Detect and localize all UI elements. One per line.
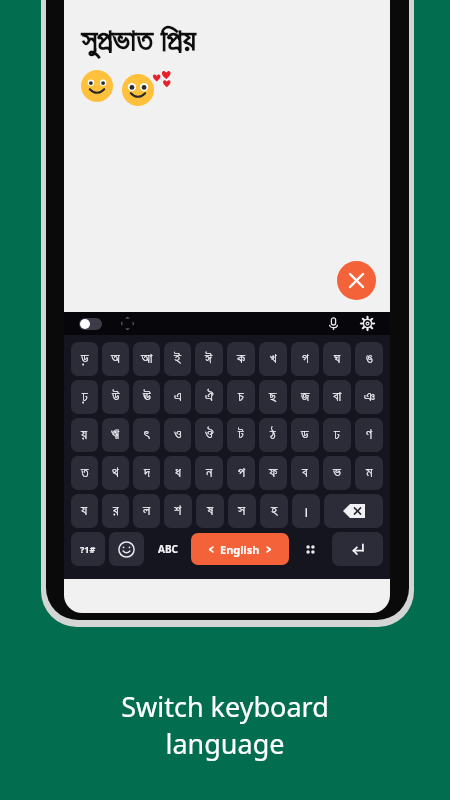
staticText: English xyxy=(220,542,260,557)
button[interactable]: এ xyxy=(164,380,191,414)
staticText: ধ xyxy=(175,466,181,480)
button[interactable]: থ xyxy=(102,456,129,490)
button[interactable]: শ xyxy=(164,494,192,528)
button[interactable]: উ xyxy=(102,380,129,414)
staticText: হ xyxy=(271,504,278,518)
staticText: ঢ় xyxy=(82,390,88,404)
button[interactable]: চ xyxy=(227,380,255,414)
button[interactable]: ষ xyxy=(196,494,224,528)
staticText: ঠ xyxy=(270,428,276,442)
staticText: চ xyxy=(238,390,244,404)
button[interactable]: ঊ xyxy=(133,380,160,414)
button[interactable]: Emoji xyxy=(109,532,144,566)
button[interactable]: গ xyxy=(291,342,319,376)
staticText: ই xyxy=(174,352,182,366)
staticText: শ xyxy=(174,504,182,518)
staticText: আ xyxy=(141,352,153,366)
staticText: ঋ xyxy=(111,428,120,442)
button[interactable]: আ xyxy=(133,342,160,376)
staticText: থ xyxy=(112,466,119,480)
button[interactable]: স xyxy=(228,494,256,528)
staticText: ক xyxy=(237,352,245,366)
staticText: অ xyxy=(111,352,120,366)
staticText: ব xyxy=(302,466,308,480)
button[interactable]: ড় xyxy=(71,342,98,376)
staticText: ণ xyxy=(366,428,372,442)
staticText: ন xyxy=(206,466,213,480)
staticText: ছ xyxy=(269,390,277,404)
button[interactable]: Enter xyxy=(332,532,383,566)
button[interactable]: ABC xyxy=(146,530,189,568)
button[interactable]: বা xyxy=(323,380,351,414)
button[interactable]: ঙ xyxy=(355,342,383,376)
button[interactable]: ছ xyxy=(259,380,287,414)
staticText: জ xyxy=(301,390,310,404)
button[interactable]: জ xyxy=(291,380,319,414)
staticText: ৎ xyxy=(144,428,150,442)
button[interactable]: ট xyxy=(227,418,255,452)
staticText: খ xyxy=(270,352,277,366)
staticText: র xyxy=(113,504,119,518)
button[interactable]: ণ xyxy=(355,418,383,452)
button[interactable]: ঐ xyxy=(195,380,223,414)
staticText: প xyxy=(238,466,245,480)
button[interactable]: ঢ xyxy=(323,418,351,452)
staticText: য় xyxy=(81,428,88,442)
staticText: বা xyxy=(333,390,342,404)
staticText: ও xyxy=(174,428,182,442)
button[interactable]: । xyxy=(292,494,320,528)
staticText: ABC xyxy=(158,542,178,556)
button[interactable]: English xyxy=(191,533,289,565)
button[interactable]: অ xyxy=(102,342,129,376)
button[interactable]: One-handed mode xyxy=(79,318,102,330)
button[interactable]: দ xyxy=(133,456,160,490)
button[interactable]: Settings xyxy=(360,316,375,331)
button[interactable]: খ xyxy=(259,342,287,376)
button[interactable]: ড xyxy=(291,418,319,452)
button[interactable]: ঢ় xyxy=(71,380,98,414)
button[interactable]: ল xyxy=(133,494,160,528)
button[interactable]: ঘ xyxy=(323,342,351,376)
button[interactable]: ও xyxy=(164,418,191,452)
staticText: ল xyxy=(143,504,151,518)
button[interactable]: ঈ xyxy=(195,342,223,376)
staticText: ঐ xyxy=(205,390,214,404)
button[interactable]: ন xyxy=(195,456,223,490)
staticText: ঔ xyxy=(205,428,214,442)
button[interactable]: য় xyxy=(71,418,98,452)
button[interactable]: র xyxy=(102,494,129,528)
button[interactable]: ই xyxy=(164,342,191,376)
button[interactable]: ঞ xyxy=(355,380,383,414)
staticText: ঢ xyxy=(334,428,340,442)
staticText: । xyxy=(303,502,309,521)
button[interactable]: Backspace xyxy=(324,494,383,528)
button[interactable]: ঔ xyxy=(195,418,223,452)
button[interactable]: Resize keyboard xyxy=(120,316,135,331)
button[interactable]: ম xyxy=(355,456,383,490)
button[interactable]: হ xyxy=(260,494,288,528)
staticText: ?1# xyxy=(80,543,96,555)
button[interactable]: ভ xyxy=(323,456,351,490)
button[interactable]: ঠ xyxy=(259,418,287,452)
button[interactable]: ৎ xyxy=(133,418,160,452)
staticText: দ xyxy=(144,466,150,480)
button[interactable]: Close xyxy=(337,261,376,300)
button[interactable]: ঋ xyxy=(102,418,129,452)
staticText: ট xyxy=(238,428,244,442)
button[interactable]: প xyxy=(227,456,255,490)
button[interactable]: য xyxy=(71,494,98,528)
staticText: গ xyxy=(302,352,309,366)
button[interactable]: More options xyxy=(291,530,330,568)
button[interactable]: ধ xyxy=(164,456,191,490)
button[interactable]: Voice input xyxy=(326,316,341,331)
staticText: ঈ xyxy=(205,352,213,366)
staticText: ড় xyxy=(81,352,89,366)
button[interactable]: ব xyxy=(291,456,319,490)
button[interactable]: ক xyxy=(227,342,255,376)
button[interactable]: ফ xyxy=(259,456,287,490)
staticText: ত xyxy=(81,466,89,480)
button[interactable]: ত xyxy=(71,456,98,490)
staticText: সুপ্রভাত প্রিয় xyxy=(81,18,195,60)
button[interactable]: ?1# xyxy=(71,532,105,566)
staticText: ঊ xyxy=(143,390,151,404)
